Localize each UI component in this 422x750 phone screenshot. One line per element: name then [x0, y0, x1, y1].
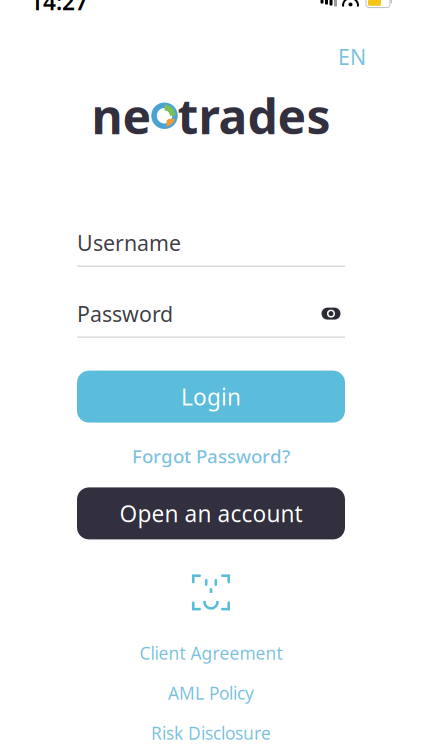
- button[interactable]: EN: [332, 39, 372, 74]
- staticText: Login: [181, 382, 241, 412]
- staticText: Risk Disclosure: [151, 721, 271, 744]
- staticText: 14:27: [30, 0, 88, 17]
- button[interactable]: Sign in with Face ID: [183, 565, 239, 619]
- button[interactable]: Risk Disclosure: [143, 717, 279, 748]
- button[interactable]: Login: [77, 371, 345, 423]
- staticText: Client Agreement: [139, 641, 282, 664]
- staticText: Username: [77, 228, 181, 257]
- staticText: EN: [338, 42, 366, 71]
- staticText: AML Policy: [168, 681, 254, 704]
- staticText: Forgot Password?: [132, 444, 290, 468]
- button[interactable]: AML Policy: [160, 677, 262, 708]
- staticText: trades: [177, 84, 330, 148]
- button[interactable]: Client Agreement: [131, 637, 290, 668]
- staticText: Password: [77, 299, 173, 328]
- button[interactable]: Forgot Password?: [122, 436, 300, 476]
- button[interactable]: Show password: [317, 302, 345, 326]
- staticText: ne: [91, 84, 151, 148]
- button[interactable]: Open an account: [77, 487, 345, 539]
- staticText: Open an account: [119, 498, 302, 528]
